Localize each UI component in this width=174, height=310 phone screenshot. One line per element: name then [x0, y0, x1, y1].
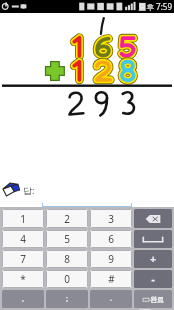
- staticText: ;: [66, 294, 68, 304]
- staticText: 1: [20, 212, 26, 226]
- button[interactable]: 3: [90, 209, 132, 228]
- staticText: ,: [22, 294, 24, 304]
- staticText: 9: [108, 252, 114, 266]
- button[interactable]: .: [90, 290, 132, 308]
- button[interactable]: 9: [90, 250, 132, 268]
- button[interactable]: 1: [2, 209, 44, 228]
- button[interactable]: Backspace: [134, 209, 172, 228]
- button[interactable]: Erase: [2, 180, 22, 200]
- button[interactable]: 4: [2, 230, 44, 248]
- button[interactable]: ;: [46, 290, 88, 308]
- staticText: 오후 7:59: [138, 1, 172, 12]
- button[interactable]: 완료: [134, 290, 172, 308]
- staticText: #: [108, 272, 115, 286]
- staticText: 2: [64, 212, 70, 226]
- staticText: 완료: [150, 295, 164, 304]
- staticText: 7: [20, 252, 26, 266]
- button[interactable]: Space: [134, 230, 172, 248]
- button[interactable]: 7: [2, 250, 44, 268]
- button[interactable]: #: [90, 270, 132, 288]
- button[interactable]: 0: [46, 270, 88, 288]
- staticText: 3: [108, 212, 114, 226]
- button[interactable]: +: [134, 250, 172, 268]
- staticText: +: [150, 252, 156, 266]
- staticText: 4: [20, 232, 26, 246]
- staticText: 0: [64, 272, 70, 286]
- button[interactable]: 5: [46, 230, 88, 248]
- button[interactable]: ,: [2, 290, 44, 308]
- button[interactable]: -: [134, 270, 172, 288]
- staticText: -: [151, 272, 155, 286]
- staticText: 6: [108, 232, 114, 246]
- staticText: 답:: [23, 184, 35, 196]
- staticText: 5: [64, 232, 70, 246]
- button[interactable]: [0, 200, 174, 207]
- button[interactable]: 6: [90, 230, 132, 248]
- button[interactable]: 2: [46, 209, 88, 228]
- button[interactable]: *: [2, 270, 44, 288]
- staticText: *: [20, 272, 26, 286]
- staticText: .: [110, 294, 112, 304]
- button[interactable]: 8: [46, 250, 88, 268]
- staticText: 8: [64, 252, 70, 266]
